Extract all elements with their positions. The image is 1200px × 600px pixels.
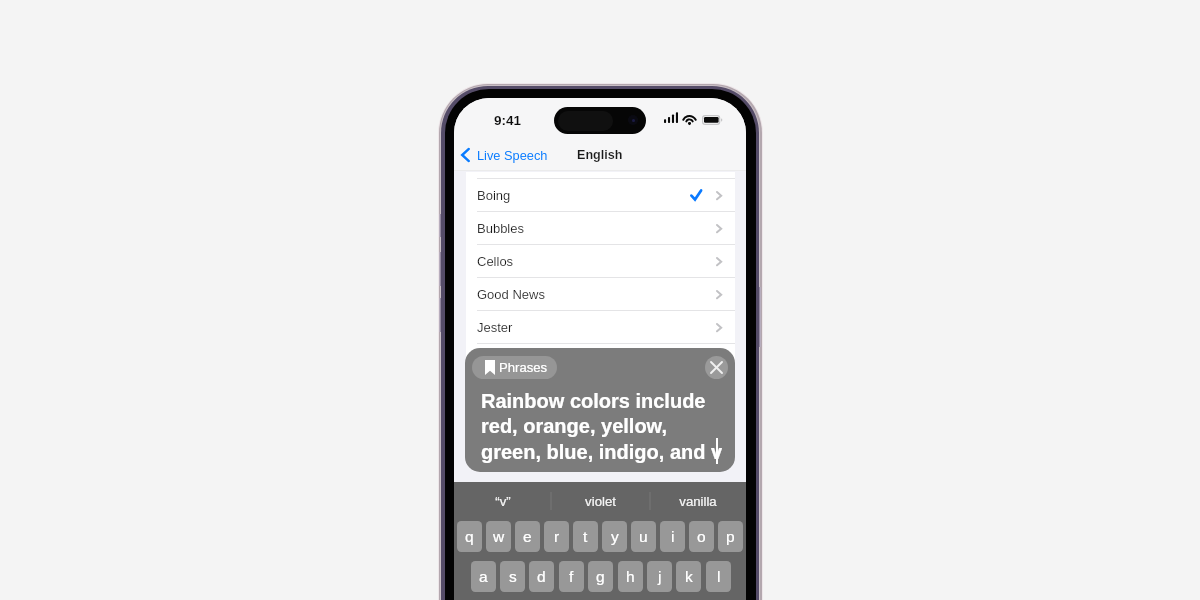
staticText: u [639,528,648,545]
staticText: 9:41 [494,113,522,128]
button[interactable]: w [486,521,511,552]
button[interactable]: s [500,561,525,592]
button[interactable]: violet [552,492,649,510]
button[interactable]: “v” [454,492,552,510]
staticText: e [523,528,532,545]
button[interactable]: h [618,561,643,592]
button[interactable]: q [457,521,482,552]
staticText: Bubbles [477,221,524,236]
button[interactable]: e [515,521,540,552]
staticText: h [626,568,635,585]
button[interactable]: j [647,561,672,592]
staticText: r [554,528,560,545]
staticText: f [569,568,574,585]
staticText: k [685,568,693,585]
button[interactable]: d [529,561,554,592]
staticText: s [509,568,517,585]
button[interactable]: f [559,561,584,592]
staticText: Phrases [499,360,548,375]
staticText: Cellos [477,254,514,269]
button[interactable]: Cellos [466,245,735,277]
staticText: Live Speech [477,148,548,162]
button[interactable]: r [544,521,569,552]
button[interactable]: a [471,561,496,592]
staticText: w [493,528,505,545]
staticText: t [583,528,588,545]
button[interactable]: g [588,561,613,592]
button[interactable]: Good News [466,278,735,310]
staticText: green, blue, indigo, and v [481,441,723,463]
staticText: Jester [477,320,513,335]
button[interactable]: vanilla [649,492,746,510]
button[interactable]: y [602,521,627,552]
button[interactable]: Phrases [472,356,557,379]
button[interactable]: Boing [466,179,735,211]
staticText: d [537,568,546,585]
button[interactable]: p [718,521,743,552]
staticText: “v” [495,494,511,509]
staticText: o [697,528,706,545]
staticText: red, orange, yellow, [481,415,667,437]
staticText: Rainbow colors include [481,390,706,412]
staticText: a [479,568,488,585]
staticText: j [658,568,662,585]
staticText: Boing [477,188,511,203]
staticText: p [726,528,735,545]
staticText: vanilla [679,494,717,509]
staticText: violet [585,494,616,509]
staticText: y [611,528,619,545]
button[interactable]: t [573,521,598,552]
button[interactable]: l [706,561,731,592]
staticText: English [577,148,623,162]
button[interactable]: i [660,521,685,552]
staticText: i [671,528,675,545]
staticText: Good News [477,287,545,302]
button[interactable]: o [689,521,714,552]
staticText: g [596,568,605,585]
button[interactable]: Jester [466,311,735,343]
button[interactable]: Close [705,356,728,379]
button[interactable]: u [631,521,656,552]
staticText: q [465,528,474,545]
button[interactable]: Bubbles [466,212,735,244]
button[interactable]: Live Speech [454,138,554,171]
staticText: l [717,568,721,585]
button[interactable]: k [676,561,701,592]
